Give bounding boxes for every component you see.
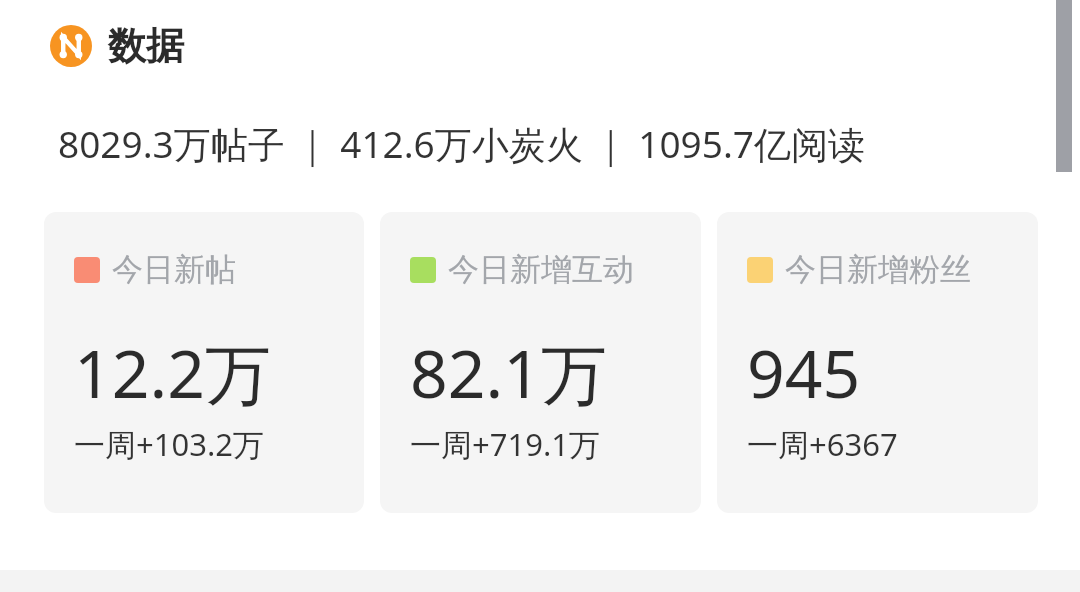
other: App logo (50, 25, 92, 67)
button[interactable]: 今日新增粉丝 (717, 212, 1038, 513)
button[interactable]: 今日新帖 (44, 212, 364, 513)
staticText: 82.1万 (410, 327, 607, 417)
staticText: 数据 (108, 22, 184, 70)
button[interactable]: App logo (50, 22, 1080, 70)
staticText: 一周+103.2万 (74, 423, 264, 465)
staticText: 今日新增互动 (448, 250, 634, 289)
button[interactable]: 今日新增互动 (380, 212, 701, 513)
staticText: 12.2万 (74, 327, 271, 417)
staticText: 今日新帖 (112, 250, 236, 289)
staticText: 今日新增粉丝 (785, 250, 971, 289)
staticText: 8029.3万帖子 ｜ 412.6万小炭火 ｜ 1095.7亿阅读 (58, 118, 866, 169)
staticText: 一周+719.1万 (410, 423, 600, 465)
staticText: 945 (747, 327, 861, 417)
staticText: 一周+6367 (747, 423, 898, 465)
